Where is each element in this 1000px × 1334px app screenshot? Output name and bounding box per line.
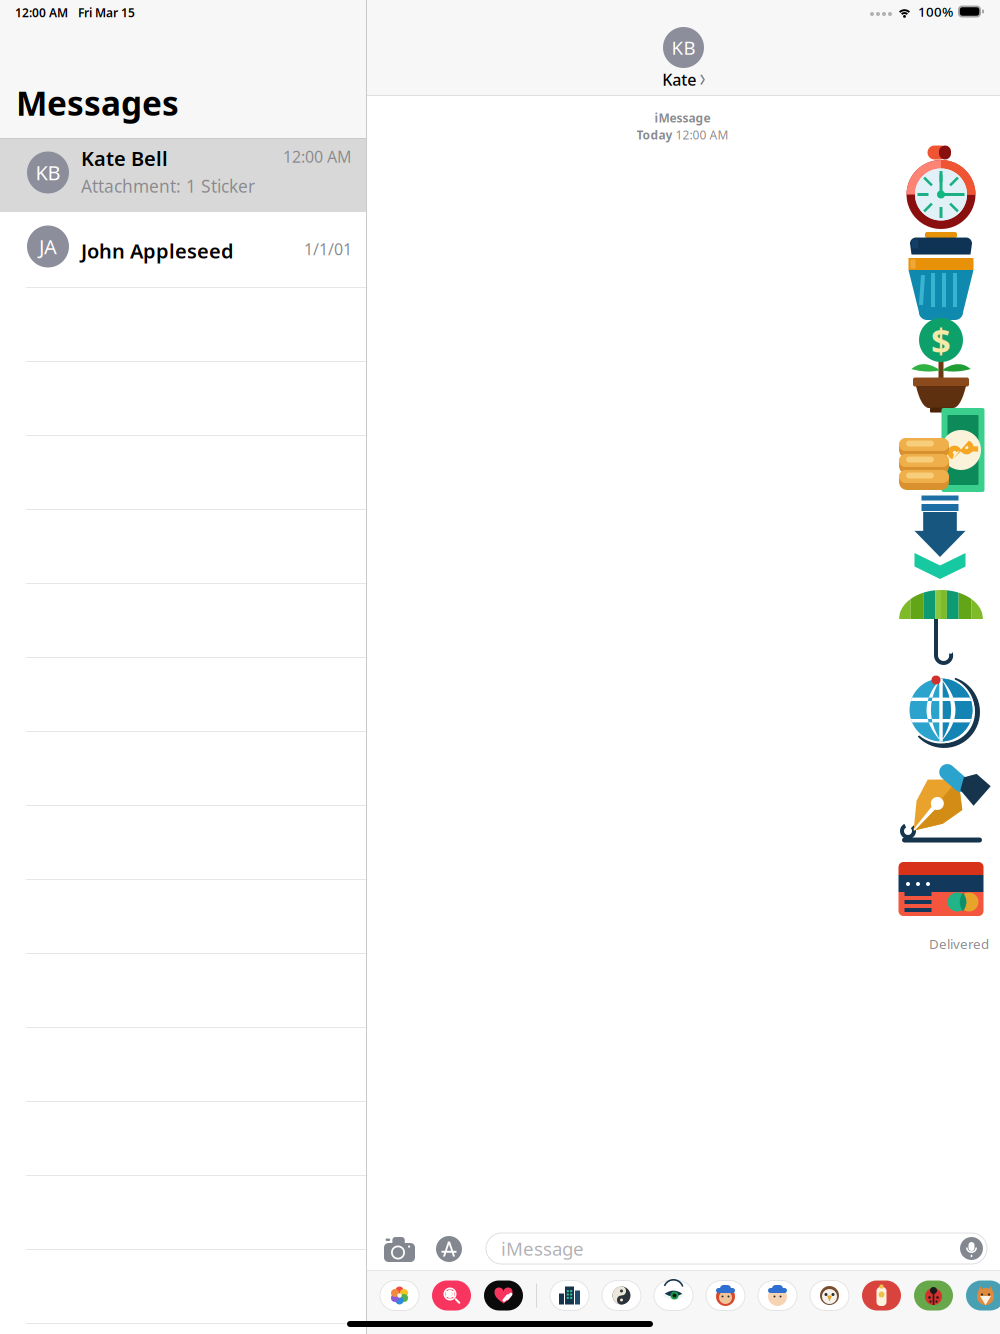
staticText: 12:00 AM xyxy=(283,146,352,167)
staticText: Delivered xyxy=(929,935,989,953)
staticText: Fri Mar 15 xyxy=(78,4,135,20)
button[interactable]: Photos xyxy=(380,1280,419,1310)
button[interactable]: JA xyxy=(0,212,366,287)
staticText: Attachment: 1 Sticker xyxy=(81,175,255,198)
button[interactable]: KB xyxy=(662,27,705,90)
staticText: KB xyxy=(35,159,60,186)
button[interactable]: Cowboy sticker xyxy=(706,1280,745,1310)
button[interactable]: #images xyxy=(432,1280,471,1310)
button[interactable]: KB xyxy=(0,139,366,212)
staticText: iMessage xyxy=(654,110,710,126)
button[interactable]: Digital Touch xyxy=(484,1280,523,1310)
button[interactable]: Clown sticker xyxy=(758,1280,797,1310)
staticText: 1/1/01 xyxy=(304,238,352,260)
button[interactable]: App Store xyxy=(436,1236,462,1262)
staticText: iMessage xyxy=(501,1236,584,1261)
button[interactable]: Sunscreen sticker xyxy=(862,1280,901,1310)
staticText: 12:00 AM xyxy=(15,4,68,20)
button[interactable]: Eye sticker xyxy=(654,1280,693,1310)
staticText: JA xyxy=(39,233,57,260)
button[interactable]: Fox sticker xyxy=(966,1280,1000,1310)
staticText: Today xyxy=(636,127,672,143)
staticText: Kate xyxy=(662,69,696,90)
button[interactable]: Yin yang sticker xyxy=(602,1280,641,1310)
staticText: KB xyxy=(671,35,695,60)
staticText: Kate Bell xyxy=(81,145,168,172)
staticText: 12:00 AM xyxy=(675,127,728,143)
button[interactable]: Ladybug sticker xyxy=(914,1280,953,1310)
button[interactable]: Camera xyxy=(384,1237,415,1262)
button[interactable]: City sticker xyxy=(550,1280,589,1310)
button[interactable]: iMessage xyxy=(486,1233,987,1264)
staticText: 100% xyxy=(918,3,953,20)
button[interactable]: Owl sticker xyxy=(810,1280,849,1310)
staticText: $ xyxy=(931,317,951,363)
staticText: Messages xyxy=(16,81,179,125)
staticText: John Appleseed xyxy=(81,237,234,264)
